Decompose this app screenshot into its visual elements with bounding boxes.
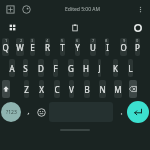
button[interactable]: Q [2,38,9,56]
staticText: G [68,63,74,74]
button[interactable]: H [83,59,89,77]
staticText: K [113,63,118,74]
button[interactable]: Enter [127,101,149,123]
button[interactable]: P [135,38,140,56]
button[interactable]: K [113,59,118,77]
button[interactable]: J [98,59,101,77]
button[interactable]: A [9,59,15,77]
staticText: 5 [61,38,64,43]
button[interactable]: F [53,59,58,77]
button[interactable]: T [60,38,65,56]
staticText: 6 [76,38,79,43]
staticText: 0 [136,38,139,43]
staticText: 1 [5,38,8,43]
button[interactable]: Period [115,106,127,118]
staticText: 2 [20,38,23,43]
button[interactable]: X [39,80,44,98]
staticText: I [106,42,109,53]
staticText: 7 [92,38,95,43]
staticText: M [114,84,122,95]
staticText: B [84,84,90,95]
staticText: L [128,63,133,74]
button[interactable]: W [16,38,24,56]
staticText: W [16,42,24,53]
staticText: P [135,42,140,53]
staticText: U [90,42,96,53]
button[interactable]: M [114,80,122,98]
button[interactable]: V [69,80,74,98]
button[interactable]: More options [133,2,147,16]
staticText: ?123 [6,109,17,116]
staticText: 9 [123,38,126,43]
button[interactable]: D [38,59,44,77]
staticText: X [39,84,44,95]
button[interactable]: Format [3,2,17,16]
staticText: E [30,42,35,53]
staticText: 4 [46,38,49,43]
staticText: F [53,63,58,74]
button[interactable]: Clipboard [68,21,81,34]
staticText: C [54,84,60,95]
staticText: N [99,84,106,95]
staticText: J [98,63,101,74]
button[interactable]: Theme [19,2,33,16]
button[interactable]: O [120,38,127,56]
button[interactable]: Z [24,80,29,98]
button[interactable]: E [30,38,35,56]
staticText: A [9,63,15,74]
button[interactable]: R [45,38,50,56]
staticText: R [45,42,50,53]
button[interactable]: ?123 [1,102,21,122]
staticText: H [83,63,89,74]
button[interactable]: I [105,38,109,56]
button[interactable]: S [23,59,28,77]
staticText: D [38,63,44,74]
staticText: T [60,42,65,53]
button[interactable]: Emoji [34,105,48,119]
staticText: Y [75,42,80,53]
staticText: O [120,42,127,53]
staticText: 8 [105,38,108,43]
button[interactable]: Backspace [129,80,137,98]
staticText: Z [24,84,29,95]
staticText: V [69,84,74,95]
button[interactable]: Shift [2,80,10,98]
button[interactable]: N [99,80,106,98]
staticText: Edited 5:00 AM [65,6,101,13]
button[interactable]: Settings [131,21,144,34]
button[interactable]: G [68,59,74,77]
button[interactable]: Comma [22,106,34,118]
button[interactable]: L [128,59,133,77]
button[interactable]: C [54,80,60,98]
staticText: S [23,63,28,74]
staticText: Q [2,42,9,53]
staticText: 3 [31,38,34,43]
button[interactable]: Y [75,38,80,56]
button[interactable]: U [90,38,96,56]
button[interactable]: B [84,80,90,98]
button[interactable]: Apps [6,21,19,34]
